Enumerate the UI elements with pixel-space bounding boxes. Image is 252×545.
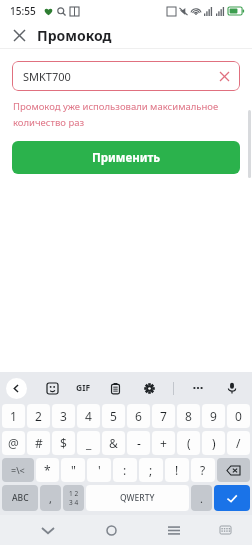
button[interactable]: Clipboard	[105, 378, 125, 398]
button[interactable]: 5	[102, 404, 125, 428]
staticText: !	[175, 462, 179, 478]
staticText: 5	[110, 408, 117, 424]
staticText: ?	[200, 462, 206, 478]
button[interactable]: Back	[6, 378, 27, 399]
staticText: 0	[235, 408, 242, 424]
button[interactable]: )	[202, 431, 225, 455]
button[interactable]: More	[188, 378, 208, 398]
staticText: ,	[49, 491, 52, 506]
staticText: (	[187, 435, 191, 451]
button[interactable]: *	[36, 458, 59, 482]
staticText: QWERTY	[120, 492, 155, 504]
staticText: $	[60, 435, 67, 451]
button[interactable]: &	[102, 431, 125, 455]
button[interactable]: Enter	[214, 485, 250, 511]
button[interactable]: #	[27, 431, 50, 455]
button[interactable]: =\<	[2, 458, 34, 482]
staticText: 3 4	[69, 498, 79, 507]
button[interactable]: /	[227, 431, 250, 455]
staticText: SMKT700	[23, 69, 71, 84]
button[interactable]: :	[113, 458, 137, 482]
staticText: 15:55	[10, 4, 36, 18]
button[interactable]: Home	[98, 517, 124, 543]
button[interactable]: $	[52, 431, 75, 455]
button[interactable]: .	[191, 485, 212, 511]
button[interactable]: 9	[202, 404, 225, 428]
button[interactable]: ,	[40, 485, 61, 511]
button[interactable]: @	[2, 431, 25, 455]
button[interactable]: Применить	[12, 141, 240, 174]
staticText: 1 2	[69, 489, 79, 498]
button[interactable]: 4	[77, 404, 100, 428]
staticText: количество раз	[13, 116, 85, 129]
button[interactable]: Back	[35, 517, 61, 543]
staticText: GIF	[76, 382, 91, 394]
button[interactable]: _	[77, 431, 100, 455]
staticText: Применить	[92, 150, 161, 166]
button[interactable]: (	[177, 431, 200, 455]
staticText: 9	[210, 408, 217, 424]
staticText: #	[35, 435, 43, 451]
button[interactable]: Clear	[214, 66, 234, 86]
button[interactable]: Voice input	[222, 378, 242, 398]
button[interactable]: Hide keyboard	[212, 517, 238, 543]
staticText: .	[200, 491, 203, 506]
button[interactable]: ?	[191, 458, 215, 482]
staticText: =\<	[11, 464, 25, 476]
staticText: Промокод	[37, 26, 112, 45]
button[interactable]: 7	[152, 404, 175, 428]
button[interactable]: GIF	[76, 382, 91, 394]
button[interactable]: 3	[52, 404, 75, 428]
button[interactable]: Close	[8, 24, 30, 46]
button[interactable]: -	[127, 431, 150, 455]
button[interactable]: '	[87, 458, 111, 482]
staticText: @	[8, 435, 19, 451]
button[interactable]: !	[165, 458, 189, 482]
staticText: )	[212, 435, 216, 451]
staticText: 7	[160, 408, 167, 424]
staticText: &	[109, 435, 118, 451]
staticText: -	[137, 435, 141, 451]
button[interactable]: Numbers	[63, 485, 84, 511]
staticText: *	[44, 462, 51, 478]
button[interactable]: 8	[177, 404, 200, 428]
button[interactable]: +	[152, 431, 175, 455]
button[interactable]: 2	[27, 404, 50, 428]
button[interactable]: 6	[127, 404, 150, 428]
staticText: 8	[185, 408, 192, 424]
button[interactable]: SMKT700	[12, 61, 240, 91]
button[interactable]: 0	[227, 404, 250, 428]
staticText: ABC	[12, 492, 29, 504]
button[interactable]: QWERTY	[86, 485, 189, 511]
button[interactable]: 1	[2, 404, 25, 428]
staticText: '	[98, 462, 101, 478]
staticText: 1	[10, 408, 17, 424]
staticText: "	[71, 462, 76, 478]
button[interactable]: Sticker	[42, 378, 62, 398]
staticText: 6	[135, 408, 142, 424]
button[interactable]: Settings	[139, 378, 159, 398]
button[interactable]: Backspace	[217, 458, 250, 482]
staticText: 3	[60, 408, 67, 424]
staticText: /	[236, 435, 241, 451]
staticText: 4	[85, 408, 92, 424]
button[interactable]: "	[61, 458, 85, 482]
button[interactable]: ;	[139, 458, 163, 482]
staticText: Промокод уже использовали максимальное	[13, 100, 219, 113]
staticText: _	[86, 435, 92, 451]
button[interactable]: ABC	[2, 485, 38, 511]
staticText: ;	[149, 462, 153, 478]
staticText: +	[160, 435, 167, 451]
staticText: :	[123, 462, 127, 478]
button[interactable]: Recents	[161, 517, 187, 543]
staticText: 2	[35, 408, 42, 424]
